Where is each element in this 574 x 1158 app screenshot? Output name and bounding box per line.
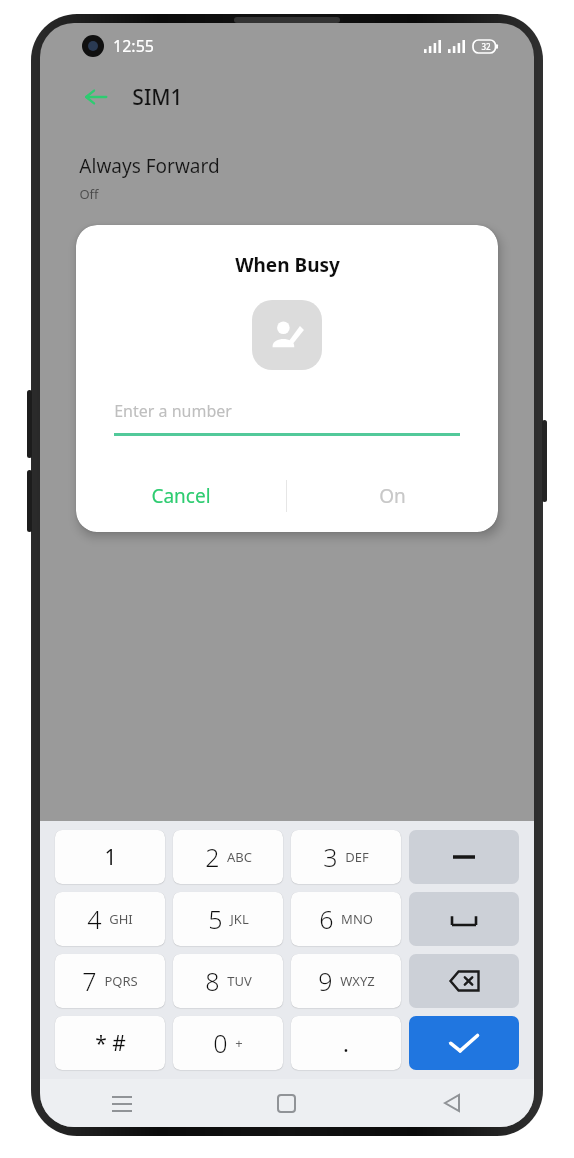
- staticText: Off: [79, 185, 99, 203]
- staticText: Cancel: [151, 483, 211, 509]
- button[interactable]: 0: [173, 1016, 283, 1070]
- button[interactable]: 1: [55, 830, 165, 884]
- staticText: JKL: [230, 910, 249, 928]
- button[interactable]: 4: [55, 892, 165, 946]
- staticText: 12:55: [113, 35, 154, 57]
- staticText: DEF: [345, 848, 369, 866]
- staticText: ABC: [227, 848, 252, 866]
- staticText: Enter a number: [114, 400, 232, 422]
- staticText: 32: [481, 41, 491, 52]
- button[interactable]: Cancel: [76, 466, 286, 526]
- staticText: GHI: [109, 910, 133, 928]
- staticText: 8: [205, 964, 220, 998]
- button[interactable]: 9: [291, 954, 401, 1008]
- staticText: * #: [95, 1029, 126, 1058]
- staticText: 4: [87, 902, 102, 936]
- button[interactable]: 8: [173, 954, 283, 1008]
- button[interactable]: 7: [55, 954, 165, 1008]
- staticText: 1: [104, 843, 117, 872]
- staticText: When Busy: [235, 252, 340, 278]
- button[interactable]: On: [287, 466, 498, 526]
- button[interactable]: Space: [409, 892, 519, 946]
- staticText: .: [343, 1028, 349, 1058]
- staticText: 3: [323, 840, 338, 874]
- button[interactable]: Backspace: [409, 954, 519, 1008]
- staticText: SIM1: [132, 83, 183, 112]
- staticText: WXYZ: [340, 972, 375, 990]
- button[interactable]: Back: [369, 1079, 534, 1127]
- staticText: MNO: [341, 910, 373, 928]
- button[interactable]: Back: [74, 75, 118, 119]
- staticText: 6: [319, 902, 334, 936]
- button[interactable]: Pick contact: [252, 300, 322, 370]
- staticText: 0: [213, 1026, 228, 1060]
- button[interactable]: Dash: [409, 830, 519, 884]
- staticText: Always Forward: [79, 153, 220, 179]
- button[interactable]: .: [291, 1016, 401, 1070]
- staticText: PQRS: [104, 972, 138, 990]
- staticText: On: [379, 483, 406, 509]
- staticText: 2: [205, 840, 220, 874]
- button[interactable]: * #: [55, 1016, 165, 1070]
- staticText: +: [235, 1034, 243, 1052]
- button[interactable]: 6: [291, 892, 401, 946]
- staticText: 5: [208, 902, 223, 936]
- staticText: TUV: [227, 972, 252, 990]
- button[interactable]: 3: [291, 830, 401, 884]
- staticText: 9: [318, 964, 333, 998]
- button[interactable]: Home: [204, 1079, 369, 1127]
- button[interactable]: Recents: [40, 1079, 204, 1127]
- button[interactable]: 2: [173, 830, 283, 884]
- staticText: 7: [82, 964, 97, 998]
- button[interactable]: Confirm: [409, 1016, 519, 1070]
- button[interactable]: 5: [173, 892, 283, 946]
